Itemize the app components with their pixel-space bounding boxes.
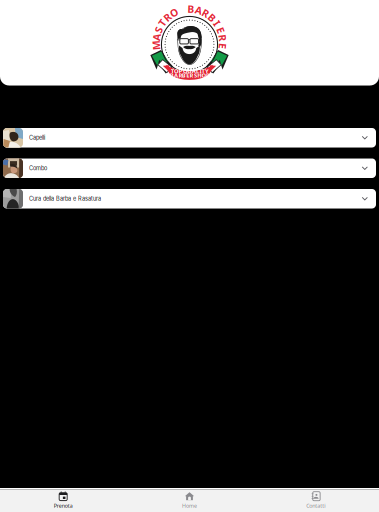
- staticText: TOP QUALITY: [172, 65, 206, 72]
- button[interactable]: Combo: [3, 158, 376, 178]
- staticText: A: [156, 32, 162, 44]
- staticText: S: [159, 25, 164, 37]
- button[interactable]: Contatti: [253, 488, 379, 512]
- staticText: R: [217, 32, 223, 45]
- staticText: A: [195, 7, 201, 19]
- staticText: Home: [182, 502, 197, 509]
- staticText: R: [201, 10, 207, 22]
- staticText: Capelli: [29, 134, 45, 141]
- staticText: E: [217, 39, 222, 52]
- staticText: I: [213, 19, 217, 31]
- staticText: B: [188, 6, 194, 18]
- staticText: E: [215, 25, 220, 38]
- staticText: T: [162, 19, 167, 31]
- staticText: BARBER SHOP: [171, 69, 207, 76]
- staticText: Combo: [29, 165, 47, 172]
- staticText: Prenota: [54, 502, 73, 509]
- button[interactable]: Prenota: [0, 488, 126, 512]
- button[interactable]: Home: [126, 488, 253, 512]
- staticText: R: [166, 13, 172, 26]
- staticText: Contatti: [306, 502, 325, 509]
- staticText: Cura della Barba e Rasatura: [29, 195, 101, 202]
- button[interactable]: Capelli: [3, 128, 376, 147]
- staticText: O: [172, 9, 179, 22]
- staticText: M: [155, 39, 164, 51]
- staticText: B: [207, 14, 213, 26]
- button[interactable]: Cura della Barba e Rasatura: [3, 189, 376, 208]
